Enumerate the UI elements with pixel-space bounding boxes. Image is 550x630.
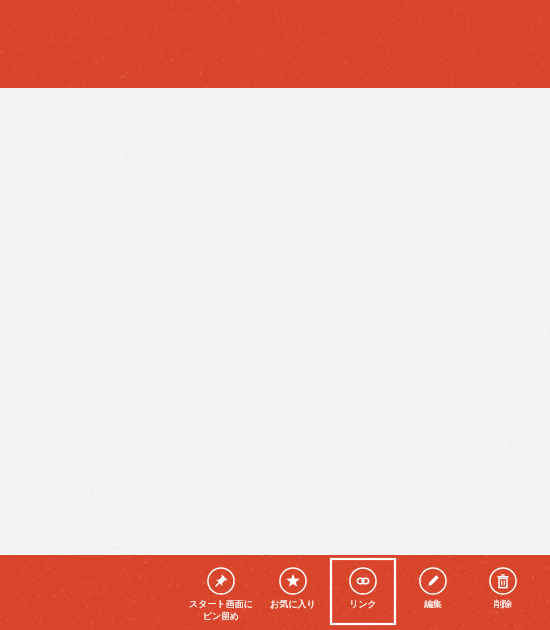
button[interactable]: リンク xyxy=(328,555,398,630)
other: お気に入り xyxy=(279,567,307,595)
other: 編集 xyxy=(419,567,447,595)
other: 削除 xyxy=(489,567,517,595)
button[interactable]: スタート画面にピン留め xyxy=(184,555,258,630)
button[interactable]: お気に入り xyxy=(258,555,328,630)
other: スタート画面にピン留め xyxy=(207,567,235,595)
button[interactable]: 削除 xyxy=(468,555,538,630)
staticText: 削除 xyxy=(494,598,512,609)
staticText: お気に入り xyxy=(270,598,316,609)
staticText: スタート画面に ピン留め xyxy=(189,598,253,622)
staticText: 編集 xyxy=(424,598,442,609)
other: リンク xyxy=(349,567,377,595)
button[interactable]: 編集 xyxy=(398,555,468,630)
staticText: リンク xyxy=(349,598,377,609)
